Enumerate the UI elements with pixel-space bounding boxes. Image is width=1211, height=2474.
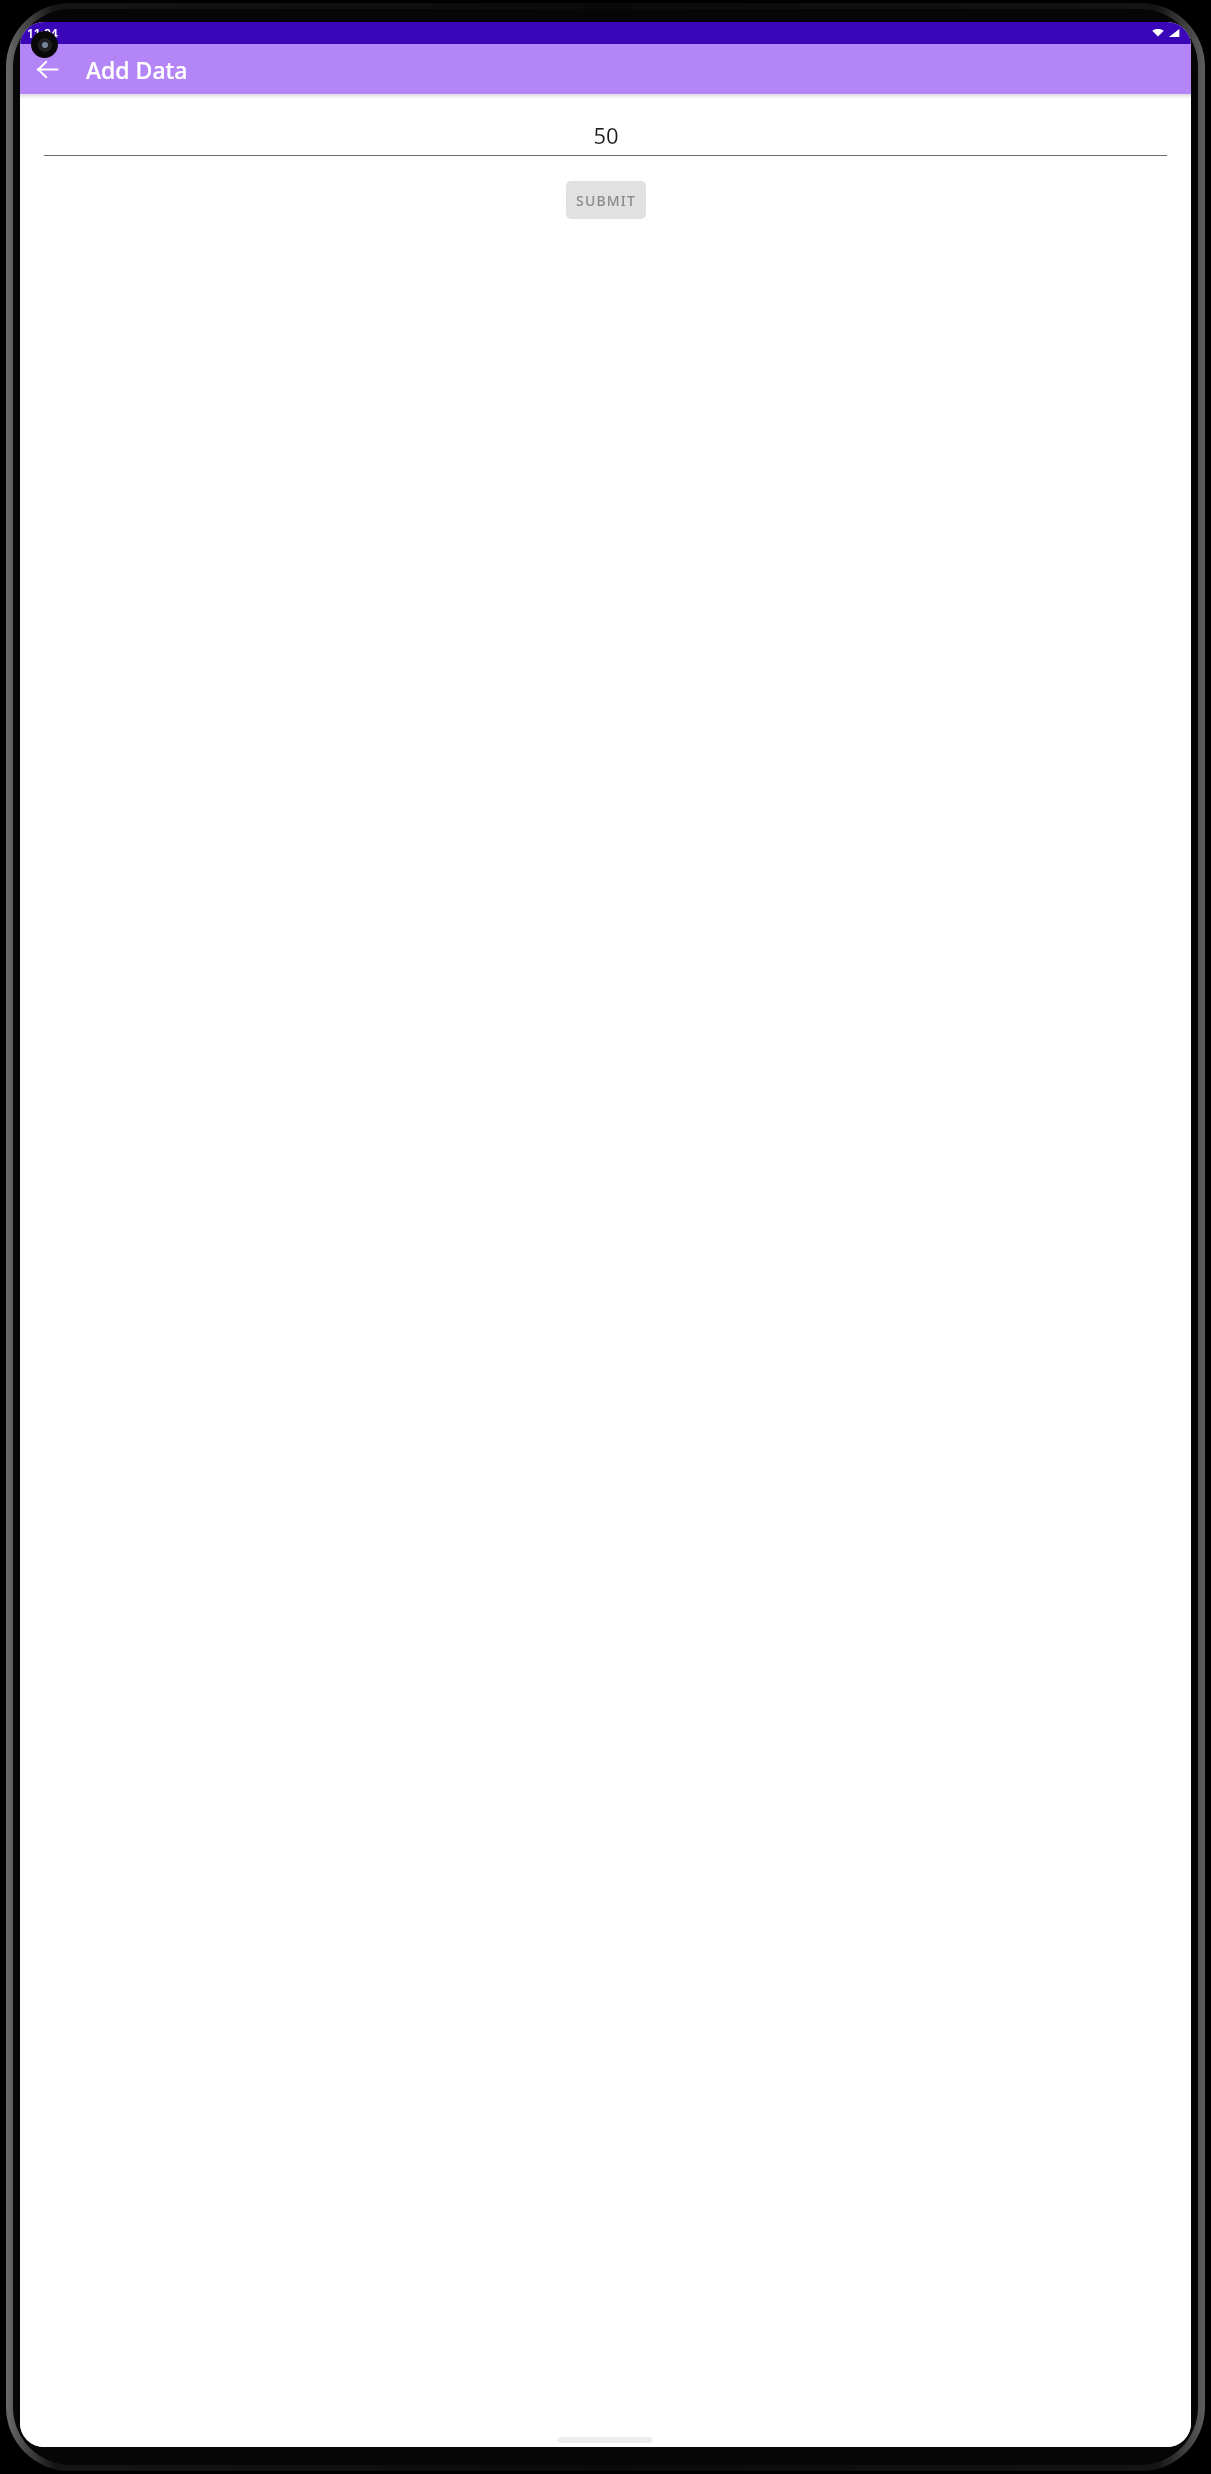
staticText: 11:04 <box>27 25 58 41</box>
button[interactable]: Navigate back <box>25 47 69 91</box>
button[interactable]: SUBMIT <box>566 181 646 219</box>
staticText: Add Data <box>86 54 188 85</box>
staticText: 50 <box>593 120 619 150</box>
staticText: SUBMIT <box>576 191 637 210</box>
